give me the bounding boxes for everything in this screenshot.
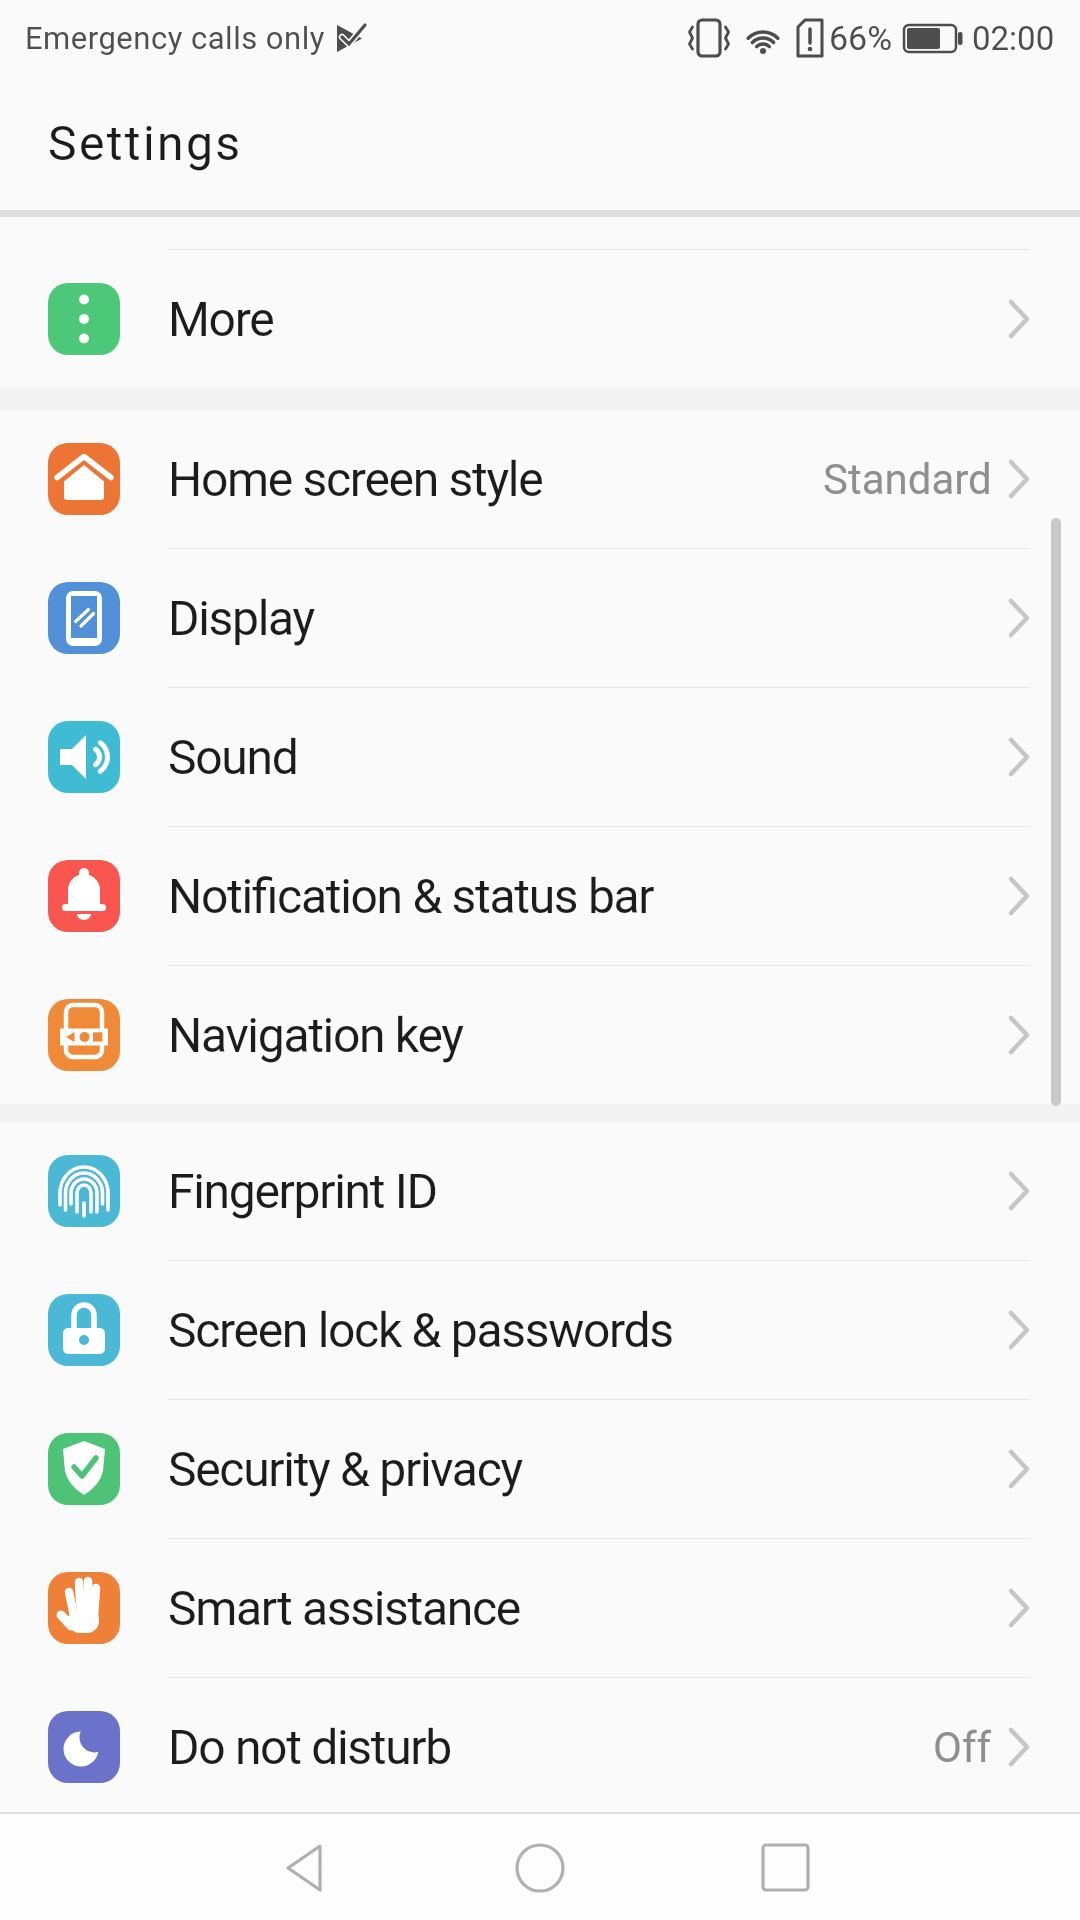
button[interactable]: Do not disturb xyxy=(0,1678,1080,1816)
staticText: Smart assistance xyxy=(168,1580,520,1636)
staticText: Fingerprint ID xyxy=(168,1163,437,1219)
staticText: Display xyxy=(168,590,314,646)
button[interactable]: Display xyxy=(0,549,1080,687)
button[interactable]: More xyxy=(0,250,1080,388)
staticText: More xyxy=(168,291,274,347)
staticText: Off xyxy=(933,1723,992,1772)
staticText: 02:00 xyxy=(972,19,1055,58)
staticText: Notification & status bar xyxy=(168,868,654,924)
button[interactable]: Sound xyxy=(0,688,1080,826)
staticText: Settings xyxy=(48,115,243,171)
staticText: Emergency calls only xyxy=(25,20,325,56)
staticText: Screen lock & passwords xyxy=(168,1302,673,1358)
staticText: Home screen style xyxy=(168,451,543,507)
button[interactable]: Security & privacy xyxy=(0,1400,1080,1538)
staticText: 66% xyxy=(829,18,893,58)
staticText: Standard xyxy=(823,455,992,504)
button[interactable] xyxy=(0,1812,360,1920)
staticText: Sound xyxy=(168,729,298,785)
button[interactable] xyxy=(360,1812,720,1920)
button[interactable]: Smart assistance xyxy=(0,1539,1080,1677)
staticText: Do not disturb xyxy=(168,1719,451,1775)
button[interactable]: Home screen style xyxy=(0,410,1080,548)
staticText: Security & privacy xyxy=(168,1441,522,1497)
button[interactable]: Notification & status bar xyxy=(0,827,1080,965)
button[interactable]: Navigation key xyxy=(0,966,1080,1104)
button[interactable]: Fingerprint ID xyxy=(0,1122,1080,1260)
staticText: Navigation key xyxy=(168,1007,463,1063)
button[interactable]: Screen lock & passwords xyxy=(0,1261,1080,1399)
button[interactable] xyxy=(720,1812,1080,1920)
